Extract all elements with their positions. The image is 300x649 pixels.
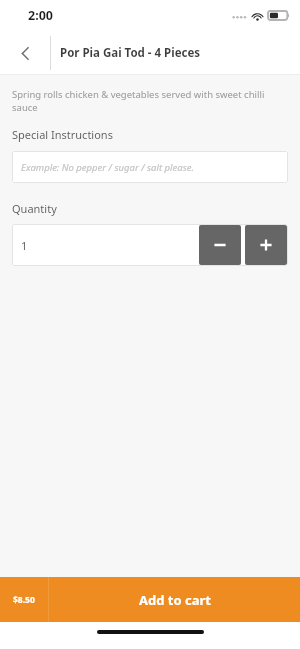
staticText: Special Instructions [12, 127, 113, 142]
button[interactable]: Back [0, 31, 50, 75]
staticText: $8.50 [13, 594, 35, 606]
staticText: Spring rolls chicken & vegetables served… [12, 88, 278, 114]
button[interactable]: Decrease quantity [199, 225, 241, 265]
button[interactable]: Increase quantity [245, 225, 287, 265]
staticText: 2:00 [28, 7, 53, 24]
button[interactable]: 1 [12, 224, 288, 266]
staticText: Por Pia Gai Tod - 4 Pieces [60, 45, 201, 61]
button[interactable]: $8.50 [0, 577, 300, 622]
staticText: Example: No pepper / sugar / salt please… [21, 161, 194, 174]
button[interactable]: Example: No pepper / sugar / salt please… [12, 151, 288, 183]
staticText: 1 [21, 238, 28, 253]
staticText: Quantity [12, 201, 57, 216]
staticText: Add to cart [139, 591, 211, 609]
